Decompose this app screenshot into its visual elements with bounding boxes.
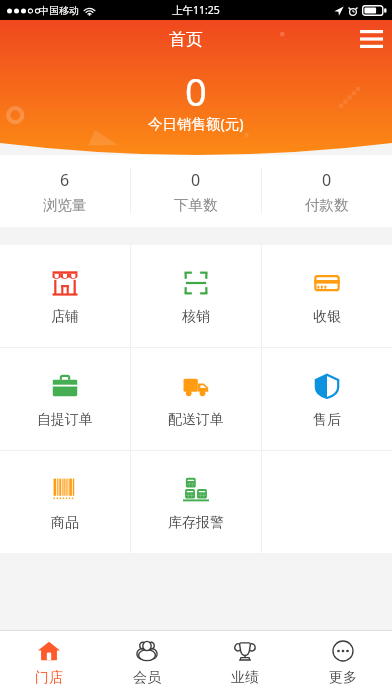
staticText: 0 xyxy=(185,65,207,117)
button[interactable]: 商品 xyxy=(0,451,130,553)
staticText: 业绩 xyxy=(231,669,259,687)
button[interactable]: 售后 xyxy=(262,348,392,450)
button[interactable]: 更多 xyxy=(294,631,392,696)
button[interactable]: 收银 xyxy=(262,245,392,347)
staticText: 0 xyxy=(322,169,332,191)
button[interactable]: 门店 xyxy=(0,631,98,696)
staticText: 配送订单 xyxy=(168,411,224,429)
staticText: 首页 xyxy=(169,29,203,50)
button[interactable]: 库存报警 xyxy=(131,451,261,553)
staticText: 自提订单 xyxy=(37,411,93,429)
staticText: 0 xyxy=(191,169,201,191)
staticText: 会员 xyxy=(133,669,161,687)
staticText: 门店 xyxy=(35,669,63,687)
staticText: 上午11:25 xyxy=(172,3,220,17)
staticText: 中国移动 xyxy=(39,4,79,17)
button[interactable]: 6 xyxy=(0,155,130,227)
staticText: 浏览量 xyxy=(43,196,87,214)
button[interactable]: 核销 xyxy=(131,245,261,347)
button[interactable]: 0 xyxy=(262,155,392,227)
staticText: 今日销售额(元) xyxy=(148,113,244,133)
button[interactable]: 0 xyxy=(131,155,261,227)
staticText: 更多 xyxy=(329,669,357,687)
staticText: 店铺 xyxy=(51,308,79,326)
staticText: 付款数 xyxy=(305,196,349,214)
button[interactable]: 自提订单 xyxy=(0,348,130,450)
button[interactable]: 业绩 xyxy=(196,631,294,696)
staticText: 核销 xyxy=(182,308,210,326)
staticText: 售后 xyxy=(313,411,341,429)
staticText: 6 xyxy=(60,169,70,191)
staticText: 收银 xyxy=(313,308,341,326)
staticText: 下单数 xyxy=(174,196,218,214)
staticText: 库存报警 xyxy=(168,514,224,532)
button[interactable]: 会员 xyxy=(98,631,196,696)
staticText: 商品 xyxy=(51,514,79,532)
button[interactable]: 店铺 xyxy=(0,245,130,347)
button[interactable]: Menu xyxy=(350,20,392,58)
button[interactable]: 配送订单 xyxy=(131,348,261,450)
